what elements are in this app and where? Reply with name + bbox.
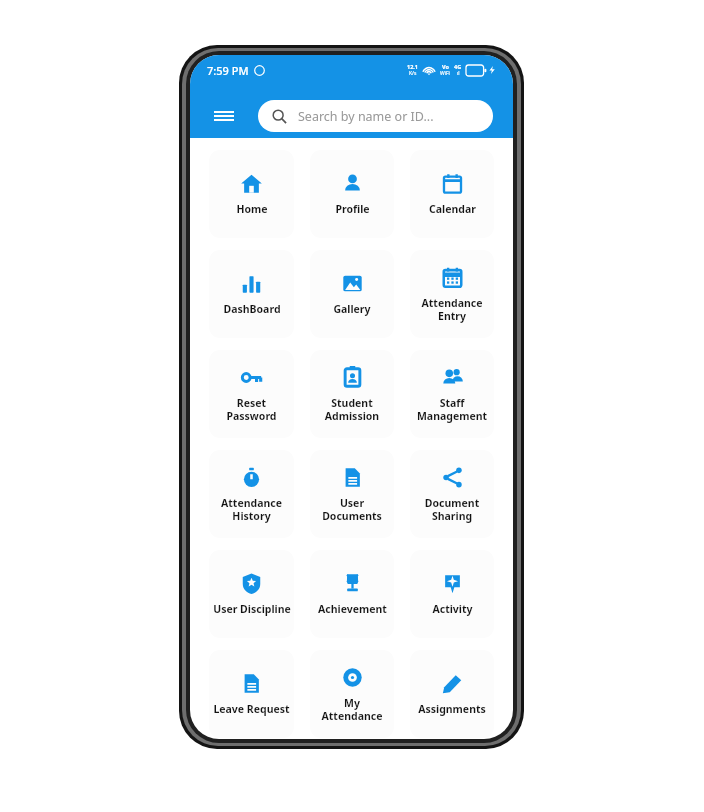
staticText: Profile [335,202,370,216]
staticText: Search by name or ID... [298,108,434,125]
staticText: Vo [442,63,449,70]
staticText: Assignments [418,702,486,716]
button[interactable]: Student Admission [310,350,394,438]
button[interactable]: DashBoard [209,250,294,338]
button[interactable]: Gallery [310,250,394,338]
staticText: User Discipline [213,602,291,616]
button[interactable]: User Discipline [209,550,294,638]
staticText: ıl [457,70,460,77]
staticText: Activity [432,602,473,616]
staticText: K/s [409,70,417,77]
staticText: Calendar [429,202,476,216]
button[interactable]: User Documents [310,450,394,538]
button[interactable]: Document Sharing [410,450,494,538]
staticText: Attendance History [212,496,291,523]
staticText: Document Sharing [413,496,491,523]
button[interactable]: Staff Management [410,350,494,438]
staticText: DashBoard [223,302,281,316]
button[interactable]: Search by name or ID... [258,100,493,132]
staticText: 12.1 [407,63,418,70]
button[interactable]: Achievement [310,550,394,638]
staticText: Staff Management [413,396,491,423]
staticText: My Attendance [313,696,391,723]
button[interactable]: Leave Request [209,650,294,738]
staticText: User Documents [313,496,391,523]
button[interactable]: Menu [206,98,242,134]
staticText: Leave Request [213,702,290,716]
staticText: 7:59 PM [207,63,249,78]
staticText: Attendance Entry [413,296,491,323]
staticText: Achievement [318,602,387,616]
button[interactable]: Attendance History [209,450,294,538]
staticText: 4G [454,63,462,70]
button[interactable]: Activity [410,550,494,638]
staticText: Reset Password [212,396,291,423]
staticText: Gallery [333,302,371,316]
staticText: WiFi [440,70,450,77]
staticText: Home [236,202,268,216]
button[interactable]: Calendar [410,150,494,238]
button[interactable]: Reset Password [209,350,294,438]
staticText: Student Admission [313,396,391,423]
button[interactable]: Assignments [410,650,494,738]
button[interactable]: Home [209,150,294,238]
button[interactable]: My Attendance [310,650,394,738]
button[interactable]: Profile [310,150,394,238]
button[interactable]: Attendance Entry [410,250,494,338]
